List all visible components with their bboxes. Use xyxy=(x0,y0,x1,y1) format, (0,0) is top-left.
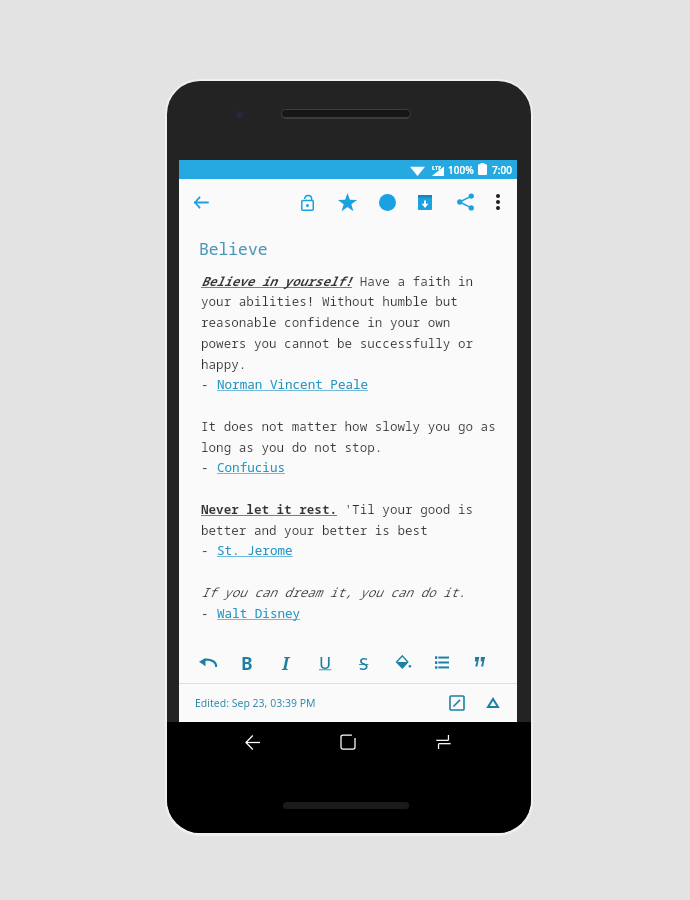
button[interactable]: Underline xyxy=(307,644,343,680)
button[interactable]: Italic xyxy=(268,644,304,680)
button[interactable]: Strikethrough xyxy=(346,644,382,680)
staticText: 100% xyxy=(448,163,474,177)
staticText: - xyxy=(201,542,217,559)
button[interactable]: Back xyxy=(185,186,217,218)
staticText: - xyxy=(201,605,217,622)
button[interactable]: Favorite xyxy=(331,186,363,218)
staticText: LTE xyxy=(432,164,442,171)
staticText: Believe in yourself! Have a faith in xyxy=(201,273,474,290)
staticText: I xyxy=(282,651,290,675)
staticText: better and your better is best xyxy=(201,522,428,539)
staticText: long as you do not stop. xyxy=(201,439,383,456)
button[interactable]: Archive xyxy=(409,186,441,218)
button[interactable]: Norman Vincent Peale xyxy=(217,376,369,393)
button[interactable]: Note color xyxy=(371,186,403,218)
button[interactable]: Quote xyxy=(463,644,499,680)
button[interactable]: Confucius xyxy=(217,459,286,476)
staticText: Edited: Sep 23, 03:39 PM xyxy=(195,696,316,710)
staticText: If you can dream it, you can do it. xyxy=(201,584,466,601)
staticText: B xyxy=(241,651,253,675)
button[interactable]: Bulleted list xyxy=(424,644,460,680)
button[interactable]: Share xyxy=(449,186,481,218)
staticText: powers you cannot be successfully or xyxy=(201,335,474,352)
button[interactable]: More options xyxy=(482,186,514,218)
staticText: your abilities! Without humble but xyxy=(201,293,458,310)
button[interactable]: Bold xyxy=(229,644,265,680)
staticText: reasonable confidence in your own xyxy=(201,314,451,331)
staticText: happy. xyxy=(201,356,247,373)
button[interactable]: Walt Disney xyxy=(217,605,301,622)
button[interactable]: Fill color xyxy=(385,644,421,680)
button[interactable]: Lock note xyxy=(291,186,323,218)
button[interactable]: St. Jerome xyxy=(217,542,293,559)
staticText: Believe xyxy=(199,238,268,260)
staticText: 7:00 xyxy=(492,163,512,177)
staticText: It does not matter how slowly you go as xyxy=(201,418,496,435)
button[interactable]: Recent apps xyxy=(423,722,463,762)
button[interactable]: Back xyxy=(232,722,272,762)
staticText: U xyxy=(319,651,332,673)
staticText: Never let it rest. 'Til your good is xyxy=(201,501,474,518)
button[interactable]: Undo xyxy=(190,644,226,680)
button[interactable]: Edit xyxy=(441,687,473,719)
staticText: - xyxy=(201,459,217,476)
button[interactable]: Home xyxy=(328,722,368,762)
staticText: - xyxy=(201,376,217,393)
button[interactable]: Collapse toolbar xyxy=(477,687,509,719)
staticText: S xyxy=(359,652,369,675)
